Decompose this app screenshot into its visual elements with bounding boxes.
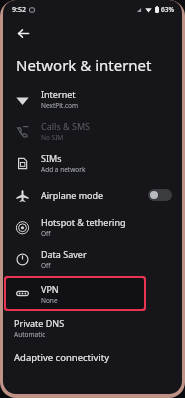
staticText: 63% bbox=[161, 5, 174, 14]
staticText: Internet bbox=[41, 88, 76, 100]
button[interactable]: SIMs bbox=[3, 147, 182, 179]
staticText: VPN bbox=[41, 283, 59, 295]
button[interactable]: Calls & SMS bbox=[3, 115, 182, 147]
staticText: Off bbox=[41, 229, 51, 238]
staticText: No SIM bbox=[41, 133, 64, 142]
staticText: Hotspot & tethering bbox=[41, 216, 126, 228]
button[interactable]: Back bbox=[11, 21, 35, 45]
staticText: Airplane mode bbox=[41, 189, 104, 201]
staticText: Off bbox=[41, 261, 51, 270]
button[interactable]: VPN bbox=[3, 275, 182, 312]
button[interactable]: Private DNS bbox=[3, 312, 182, 343]
staticText: Calls & SMS bbox=[41, 120, 91, 132]
staticText: Network & internet bbox=[16, 55, 152, 75]
button[interactable]: Hotspot & tethering bbox=[3, 211, 182, 243]
staticText: Add a network bbox=[41, 165, 86, 174]
button[interactable]: Airplane mode toggle bbox=[148, 189, 172, 201]
staticText: NextPit.com bbox=[41, 101, 79, 110]
staticText: SIMs bbox=[41, 152, 62, 164]
button[interactable]: Data Saver bbox=[3, 243, 182, 275]
button[interactable]: Airplane mode bbox=[3, 179, 182, 211]
staticText: None bbox=[41, 296, 58, 305]
staticText: 9:52 bbox=[12, 5, 26, 15]
staticText: Adaptive connectivity bbox=[14, 351, 110, 364]
button[interactable]: Adaptive connectivity bbox=[3, 343, 182, 371]
staticText: Automatic bbox=[14, 330, 46, 339]
staticText: Data Saver bbox=[41, 248, 87, 260]
button[interactable]: Internet bbox=[3, 83, 182, 115]
staticText: Private DNS bbox=[14, 317, 65, 329]
